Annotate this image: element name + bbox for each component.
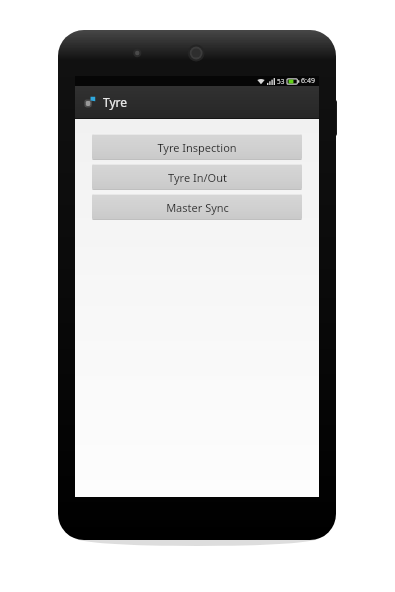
button[interactable]: Tyre Inspection [92,134,302,160]
button[interactable]: Master Sync [92,194,302,220]
other: Tyre app icon [83,96,96,109]
staticText: Tyre Inspection [157,140,237,155]
staticText: 53 [277,77,285,86]
button[interactable]: Tyre In/Out [92,164,302,190]
staticText: Tyre [103,94,128,110]
staticText: Tyre In/Out [168,170,227,185]
staticText: Master Sync [166,200,229,215]
staticText: 6:49 [301,76,315,86]
